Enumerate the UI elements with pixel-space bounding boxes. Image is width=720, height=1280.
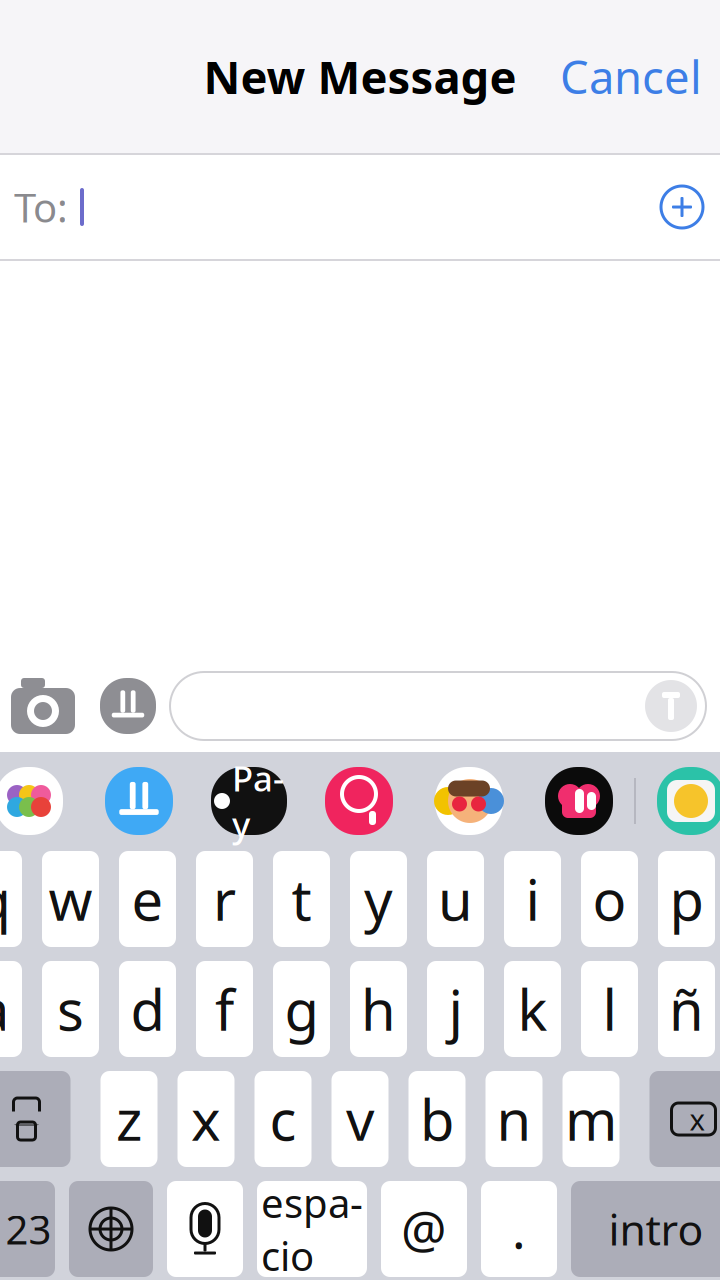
- button[interactable]: espacio: [257, 1181, 367, 1277]
- staticText: t: [291, 862, 311, 936]
- button[interactable]: c: [254, 1071, 311, 1167]
- button[interactable]: b: [408, 1071, 465, 1167]
- staticText: espacio: [261, 1176, 363, 1280]
- staticText: Pay: [232, 755, 284, 847]
- button[interactable]: i: [504, 851, 561, 947]
- button[interactable]: u: [427, 851, 484, 947]
- staticText: d: [130, 972, 164, 1046]
- button[interactable]: .: [481, 1181, 557, 1277]
- button[interactable]: Images: [304, 752, 414, 850]
- button[interactable]: Cancel: [542, 30, 720, 123]
- button[interactable]: Dictate: [167, 1181, 243, 1277]
- staticText: Cancel: [560, 46, 702, 107]
- staticText: x: [191, 1082, 221, 1156]
- button[interactable]: Photos: [0, 752, 84, 850]
- button[interactable]: Add contact: [649, 174, 715, 240]
- button[interactable]: n: [485, 1071, 542, 1167]
- button[interactable]: Digital Touch: [524, 752, 634, 850]
- staticText: f: [215, 972, 234, 1046]
- button[interactable]: y: [350, 851, 407, 947]
- staticText: y: [364, 862, 393, 936]
- button[interactable]: l: [581, 961, 638, 1057]
- staticText: w: [48, 862, 92, 936]
- button[interactable]: Next keyboard: [69, 1181, 153, 1277]
- staticText: a: [0, 972, 9, 1046]
- staticText: k: [517, 972, 547, 1046]
- staticText: g: [284, 972, 318, 1046]
- staticText: b: [420, 1082, 454, 1156]
- button[interactable]: s: [42, 961, 99, 1057]
- staticText: @: [401, 1195, 447, 1263]
- staticText: p: [669, 862, 703, 936]
- button[interactable]: Delete: [649, 1071, 720, 1167]
- button[interactable]: Send: [642, 677, 700, 735]
- button[interactable]: r: [196, 851, 253, 947]
- button[interactable]: More apps: [636, 752, 720, 850]
- staticText: v: [346, 1082, 374, 1156]
- button[interactable]: z: [100, 1071, 157, 1167]
- staticText: 123: [0, 1202, 51, 1255]
- staticText: q: [0, 862, 10, 936]
- staticText: z: [116, 1082, 142, 1156]
- button[interactable]: w: [42, 851, 99, 947]
- staticText: n: [496, 1082, 531, 1156]
- button[interactable]: x: [177, 1071, 234, 1167]
- button[interactable]: @: [381, 1181, 467, 1277]
- staticText: o: [592, 862, 626, 936]
- staticText: x: [689, 1099, 705, 1138]
- button[interactable]: a: [0, 961, 22, 1057]
- staticText: l: [602, 972, 616, 1046]
- button[interactable]: g: [273, 961, 330, 1057]
- staticText: i: [525, 862, 539, 936]
- staticText: New Message: [203, 46, 516, 107]
- staticText: To:: [14, 180, 68, 233]
- button[interactable]: h: [350, 961, 407, 1057]
- button[interactable]: v: [331, 1071, 388, 1167]
- button[interactable]: e: [119, 851, 176, 947]
- button[interactable]: f: [196, 961, 253, 1057]
- staticText: e: [131, 862, 163, 936]
- button[interactable]: Camera: [0, 660, 86, 752]
- button[interactable]: k: [504, 961, 561, 1057]
- staticText: ñ: [669, 972, 704, 1046]
- button[interactable]: d: [119, 961, 176, 1057]
- button[interactable]: Apple Pay: [194, 752, 304, 850]
- button[interactable]: App Store: [84, 752, 194, 850]
- button[interactable]: Apps: [86, 660, 170, 752]
- staticText: s: [57, 972, 84, 1046]
- staticText: j: [448, 972, 462, 1046]
- button[interactable]: q: [0, 851, 22, 947]
- button[interactable]: 123: [0, 1181, 55, 1277]
- button[interactable]: t: [273, 851, 330, 947]
- staticText: c: [269, 1082, 296, 1156]
- staticText: intro: [608, 1201, 703, 1257]
- staticText: h: [361, 972, 396, 1046]
- button[interactable]: m: [562, 1071, 619, 1167]
- staticText: r: [213, 862, 236, 936]
- button[interactable]: Shift: [0, 1071, 70, 1167]
- staticText: .: [512, 1195, 526, 1263]
- button[interactable]: o: [581, 851, 638, 947]
- staticText: m: [565, 1082, 617, 1156]
- button[interactable]: Memoji Stickers: [414, 752, 524, 850]
- button[interactable]: intro: [571, 1181, 720, 1277]
- button[interactable]: ñ: [658, 961, 715, 1057]
- staticText: u: [438, 862, 473, 936]
- button[interactable]: j: [427, 961, 484, 1057]
- button[interactable]: p: [658, 851, 715, 947]
